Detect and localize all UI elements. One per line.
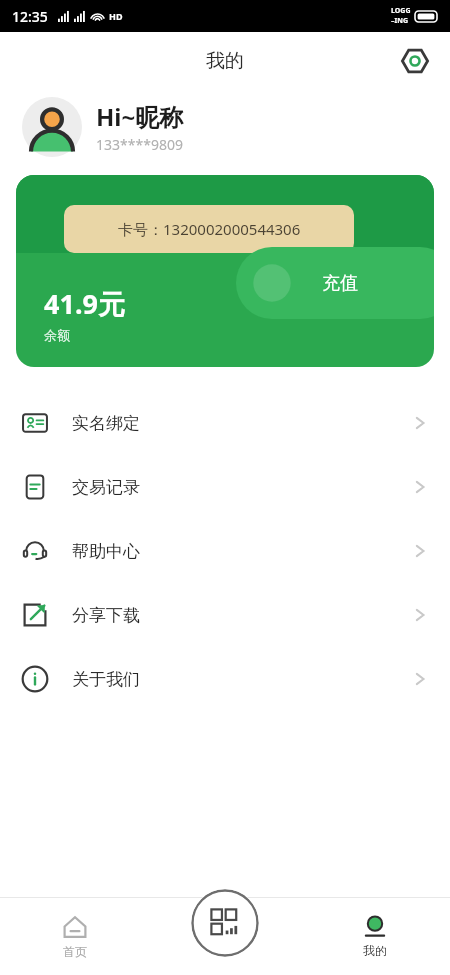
staticText: Hi~昵称: [96, 100, 184, 133]
staticText: 帮助中心: [72, 541, 140, 562]
button[interactable]: Settings: [396, 42, 434, 80]
button[interactable]: Scan: [191, 889, 259, 957]
staticText: 交易记录: [72, 477, 140, 498]
staticText: 实名绑定: [72, 413, 140, 434]
staticText: 关于我们: [72, 669, 140, 690]
button[interactable]: 实名绑定: [0, 391, 450, 455]
button[interactable]: 首页: [0, 897, 150, 975]
staticText: 41.9元: [44, 285, 125, 322]
staticText: HD: [109, 10, 123, 22]
staticText: –ING: [391, 16, 408, 26]
button[interactable]: 交易记录: [0, 455, 450, 519]
staticText: 分享下载: [72, 605, 140, 626]
button[interactable]: 卡号：1320002000544306: [16, 175, 434, 367]
staticText: 我的: [363, 943, 387, 958]
staticText: 133****9809: [96, 135, 183, 154]
button[interactable]: 帮助中心: [0, 519, 450, 583]
staticText: 充值: [322, 272, 358, 295]
button[interactable]: 关于我们: [0, 647, 450, 711]
staticText: 卡号：1320002000544306: [118, 219, 301, 239]
button[interactable]: 分享下载: [0, 583, 450, 647]
staticText: 首页: [63, 944, 87, 959]
button[interactable]: 我的: [300, 897, 450, 975]
staticText: LOGG: [391, 6, 411, 16]
staticText: 12:35: [12, 7, 48, 26]
button[interactable]: 充值: [236, 247, 434, 319]
staticText: 余额: [44, 327, 70, 343]
button[interactable]: Hi~昵称: [0, 89, 450, 161]
staticText: 我的: [206, 49, 244, 73]
